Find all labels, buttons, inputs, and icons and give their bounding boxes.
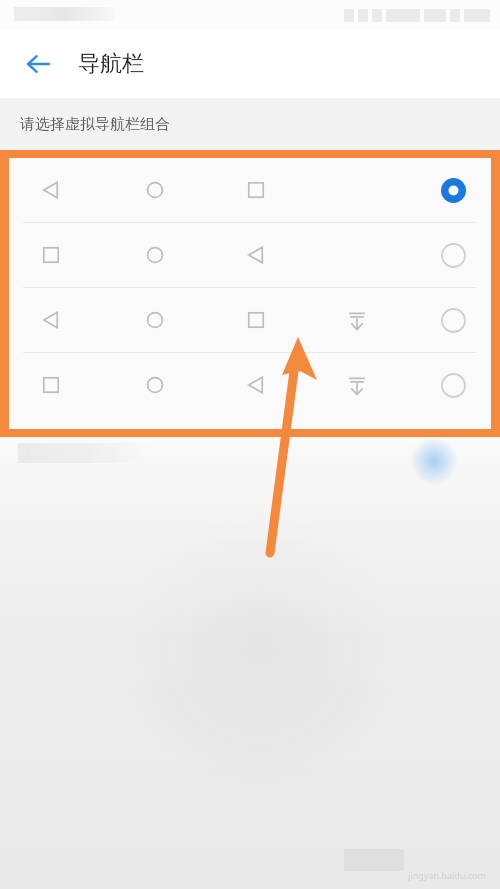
staticText: 请选择虚拟导航栏组合 (20, 115, 170, 134)
staticText: jingyan.baidu.com (408, 869, 486, 881)
button[interactable]: Navigation bar layout option (9, 353, 491, 417)
button[interactable]: Navigation bar layout option (9, 288, 491, 352)
button[interactable]: Navigation bar layout option (9, 158, 491, 222)
button[interactable]: Navigation bar layout option (9, 223, 491, 287)
staticText: 导航栏 (78, 50, 144, 78)
button[interactable]: Back (14, 40, 62, 88)
